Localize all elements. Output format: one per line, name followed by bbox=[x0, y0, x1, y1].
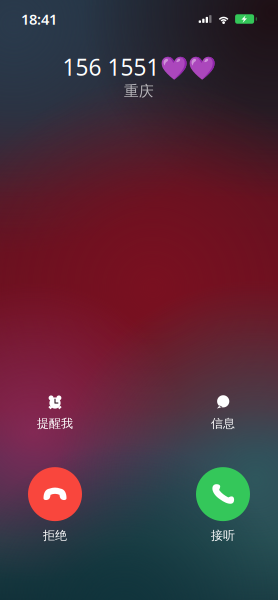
staticText: 156 1551💜💜 bbox=[62, 52, 215, 82]
staticText: 18:41 bbox=[21, 9, 57, 29]
button[interactable]: 信息 bbox=[186, 389, 260, 437]
staticText: 接听 bbox=[211, 528, 235, 543]
button[interactable]: 提醒我 bbox=[18, 389, 92, 437]
staticText: 拒绝 bbox=[43, 528, 67, 543]
staticText: 信息 bbox=[211, 416, 235, 431]
staticText: 提醒我 bbox=[37, 416, 73, 431]
button[interactable]: 拒绝 bbox=[18, 467, 92, 543]
staticText: 重庆 bbox=[124, 82, 154, 100]
button[interactable]: 接听 bbox=[186, 467, 260, 543]
